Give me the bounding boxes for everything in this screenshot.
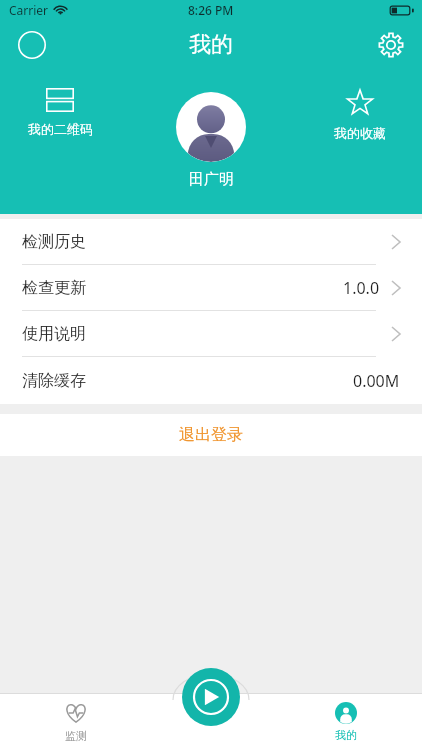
- staticText: 我的二维码: [28, 121, 93, 137]
- staticText: 清除缓存: [22, 371, 86, 391]
- button[interactable]: 监测: [40, 694, 112, 750]
- button[interactable]: Help: [14, 27, 50, 63]
- staticText: 田广明: [189, 170, 234, 189]
- button[interactable]: 检查更新: [0, 265, 422, 311]
- button[interactable]: 退出登录: [0, 414, 422, 456]
- button[interactable]: Start: [182, 668, 240, 726]
- button[interactable]: 田广明: [176, 92, 246, 189]
- button[interactable]: 我的: [310, 694, 382, 750]
- staticText: 我的: [189, 31, 233, 59]
- staticText: 使用说明: [22, 324, 86, 344]
- staticText: 退出登录: [179, 425, 243, 445]
- staticText: 检测历史: [22, 232, 86, 252]
- staticText: 监测: [65, 729, 87, 743]
- staticText: 8:26 PM: [188, 2, 234, 18]
- button[interactable]: 检测历史: [0, 219, 422, 265]
- staticText: 检查更新: [22, 278, 86, 298]
- staticText: 1.0.0: [343, 277, 380, 299]
- staticText: Carrier: [9, 2, 49, 18]
- button[interactable]: 使用说明: [0, 311, 422, 357]
- button[interactable]: Settings: [372, 26, 410, 64]
- button[interactable]: 我的收藏: [310, 88, 410, 141]
- staticText: 我的收藏: [334, 125, 386, 141]
- staticText: 0.00M: [353, 370, 400, 392]
- button[interactable]: 清除缓存: [0, 357, 422, 404]
- staticText: 我的: [335, 728, 357, 742]
- button[interactable]: 我的二维码: [10, 88, 110, 137]
